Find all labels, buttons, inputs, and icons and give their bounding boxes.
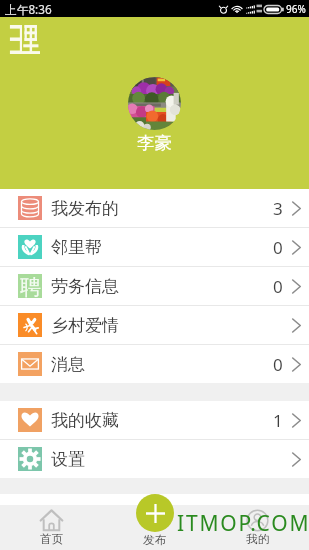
staticText: 我的收藏 (51, 410, 119, 431)
staticText: 3 (273, 197, 283, 220)
staticText: 聘 (20, 274, 41, 298)
staticText: 0 (273, 353, 283, 376)
staticText: 消息 (51, 354, 85, 375)
staticText: 李豪 (137, 132, 172, 154)
staticText: 邻里帮 (51, 237, 102, 258)
staticText: ITMOP.COM (177, 509, 309, 538)
staticText: 96% (286, 2, 306, 16)
staticText: 乡村爱情 (51, 315, 119, 336)
staticText: 上午8:36 (5, 1, 52, 17)
staticText: 我的 (246, 532, 270, 547)
button[interactable]: 聘 (0, 267, 309, 305)
staticText: 我发布的 (51, 198, 119, 219)
button[interactable]: 邻里帮 (0, 228, 309, 266)
button[interactable]: 乡村爱情 (0, 306, 309, 344)
staticText: 劳务信息 (51, 276, 119, 297)
staticText: 0 (273, 236, 283, 259)
staticText: 首页 (40, 532, 64, 547)
button[interactable]: 我的收藏 (0, 401, 309, 439)
button[interactable]: 我发布的 (0, 189, 309, 227)
button[interactable]: 我的 (206, 494, 309, 550)
button[interactable]: 首页 (0, 494, 103, 550)
button[interactable]: 发布 (136, 494, 174, 532)
staticText: 0 (273, 275, 283, 298)
button[interactable]: 消息 (0, 345, 309, 383)
staticText: 1 (273, 409, 283, 432)
staticText: 发布 (143, 533, 167, 548)
staticText: 设置 (51, 449, 85, 470)
button[interactable]: Profile photo (128, 77, 181, 130)
button[interactable]: 设置 (0, 440, 309, 478)
